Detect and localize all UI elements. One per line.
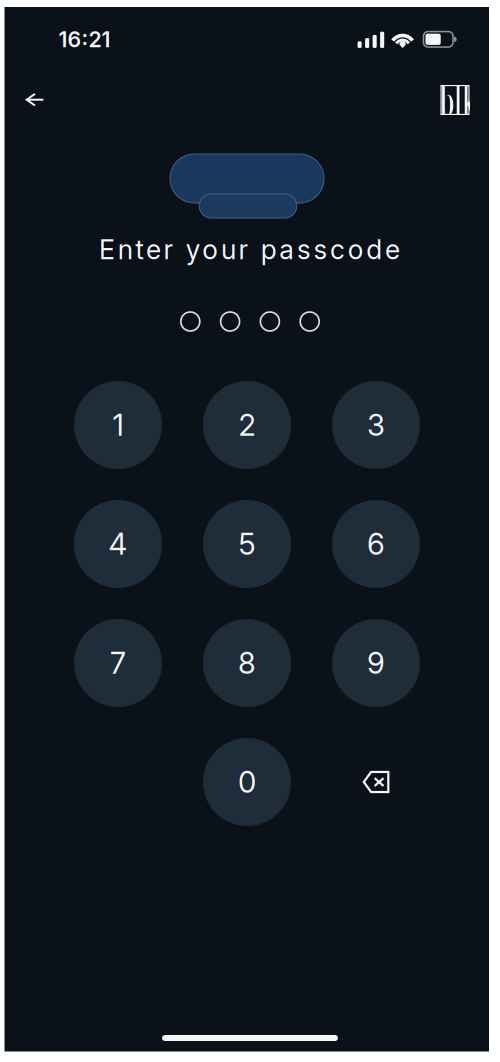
- button[interactable]: 6: [332, 500, 420, 588]
- button[interactable]: 5: [203, 500, 291, 588]
- staticText: 3: [367, 407, 385, 443]
- staticText: Enter your passcode: [99, 233, 400, 266]
- staticText: 2: [238, 407, 255, 443]
- button[interactable]: 4: [74, 500, 162, 588]
- button[interactable]: 3: [332, 381, 420, 469]
- staticText: 5: [238, 526, 255, 562]
- staticText: blk: [440, 62, 500, 147]
- button[interactable]: Back: [12, 78, 58, 122]
- staticText: 7: [110, 645, 126, 681]
- staticText: 1: [112, 407, 123, 443]
- button[interactable]: Delete: [332, 738, 420, 826]
- button[interactable]: 9: [332, 619, 420, 707]
- button[interactable]: 0: [203, 738, 291, 826]
- button[interactable]: 7: [74, 619, 162, 707]
- button[interactable]: 1: [74, 381, 162, 469]
- staticText: 9: [367, 645, 385, 681]
- staticText: 6: [367, 526, 385, 562]
- staticText: 8: [238, 645, 256, 681]
- button[interactable]: 8: [203, 619, 291, 707]
- staticText: 16:21: [58, 27, 110, 52]
- button[interactable]: 2: [203, 381, 291, 469]
- staticText: 0: [238, 764, 256, 800]
- button[interactable]: blk: [440, 85, 469, 115]
- staticText: 4: [108, 526, 127, 562]
